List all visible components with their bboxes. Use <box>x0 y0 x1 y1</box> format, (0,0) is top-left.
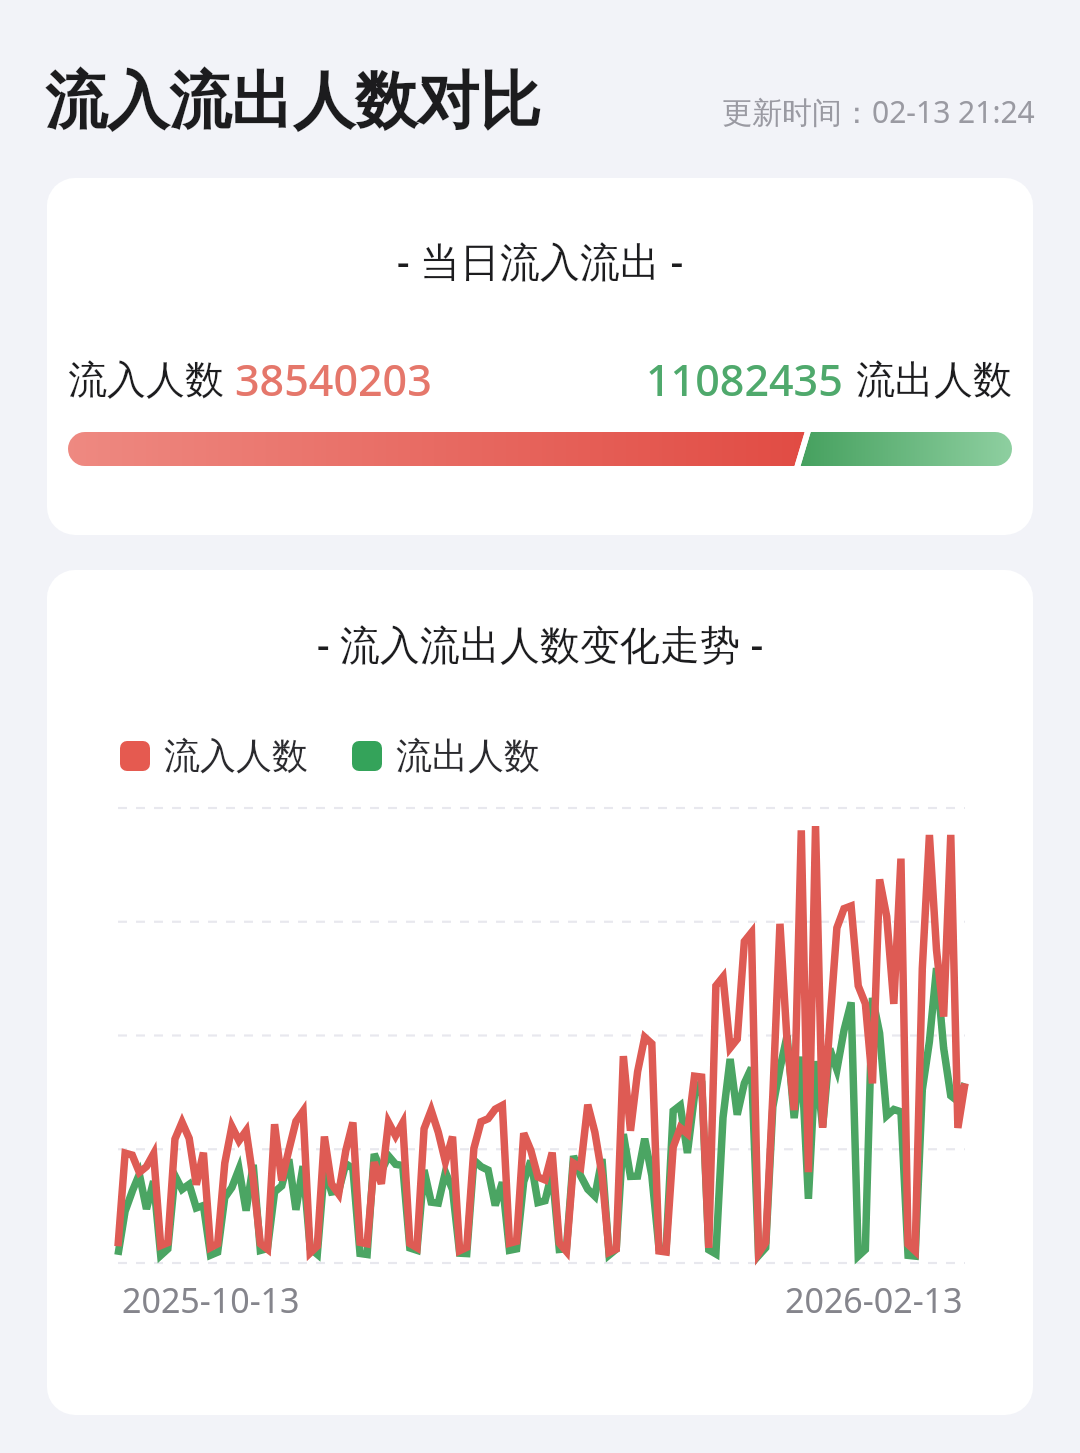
staticText: 更新时间：02-13 21:24 <box>722 91 1035 132</box>
staticText: 流出人数 <box>856 355 1012 404</box>
other: 流入流出人数变化走势折线图 <box>118 808 965 1263</box>
staticText: 2026-02-13 <box>785 1277 963 1323</box>
staticText: - 流入流出人数变化走势 - <box>47 616 1033 671</box>
staticText: 流入人数 <box>164 733 308 778</box>
staticText: 流入人数 <box>68 355 224 404</box>
staticText: 2025-10-13 <box>122 1277 300 1323</box>
button[interactable]: - 流入流出人数变化走势 - <box>47 570 1033 1415</box>
staticText: 流出人数 <box>396 733 540 778</box>
staticText: 38540203 <box>235 350 432 409</box>
staticText: - 当日流入流出 - <box>47 233 1033 288</box>
staticText: 11082435 <box>646 350 843 409</box>
staticText: 流入流出人数对比 <box>45 62 541 140</box>
button[interactable]: - 当日流入流出 - <box>47 178 1033 535</box>
